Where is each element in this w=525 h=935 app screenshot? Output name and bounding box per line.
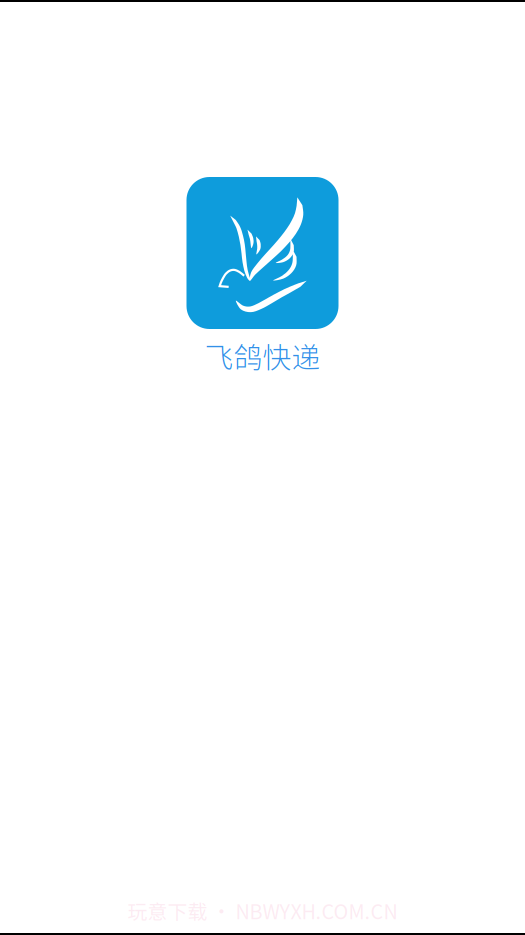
button[interactable]: 飞鸽快递: [186, 177, 338, 376]
staticText: 飞鸽快递: [204, 335, 320, 376]
staticText: 玩意下载 · NBWYXH.COM.CN: [127, 896, 397, 925]
